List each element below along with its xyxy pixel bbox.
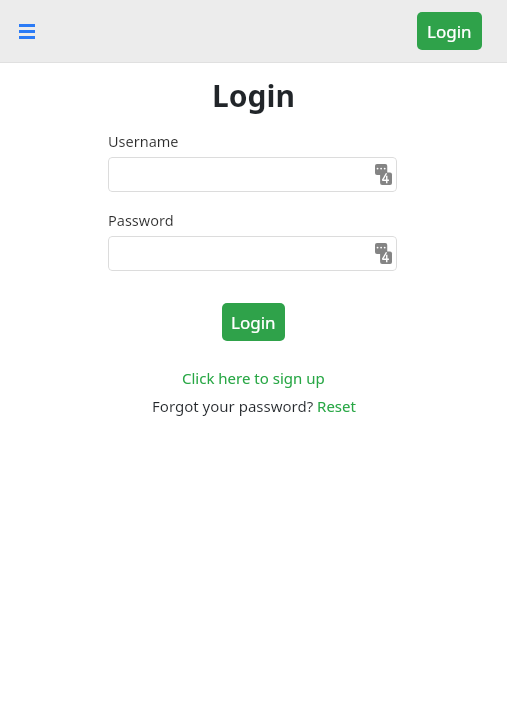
staticText: Login [427,20,472,43]
button[interactable]: Menu [13,17,41,45]
button[interactable]: Login [417,12,482,50]
staticText: Password [108,210,174,230]
button[interactable]: Autofill [108,157,397,192]
button[interactable]: Click here to sign up [0,368,507,388]
other: Autofill [375,164,392,185]
staticText: Login [212,75,295,116]
staticText: Click here to sign up [182,368,325,388]
button[interactable]: Forgot your password? Reset [0,396,507,416]
button[interactable]: Autofill [108,236,397,271]
staticText: Login [231,311,276,334]
other: Autofill [375,243,392,264]
staticText: Username [108,131,179,151]
button[interactable]: Login [222,303,285,341]
staticText: Forgot your password? Reset [152,396,356,416]
